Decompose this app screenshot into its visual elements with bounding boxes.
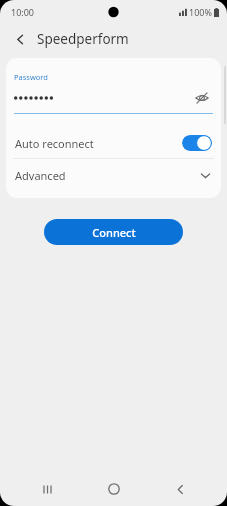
button[interactable]: Auto reconnect: [6, 128, 221, 158]
button[interactable]: Auto reconnect toggle: [182, 135, 212, 151]
staticText: Connect: [92, 225, 136, 240]
button[interactable]: Advanced: [6, 159, 221, 192]
staticText: Auto reconnect: [15, 136, 94, 151]
staticText: Speedperform: [37, 30, 129, 48]
button[interactable]: Show password: [191, 87, 213, 109]
staticText: 100%: [189, 6, 212, 18]
staticText: Advanced: [15, 168, 66, 183]
button[interactable]: Home: [95, 474, 133, 504]
button[interactable]: Recent apps: [28, 474, 66, 504]
button[interactable]: Back: [8, 27, 32, 51]
button[interactable]: Connect: [44, 219, 183, 245]
button[interactable]: Back: [161, 474, 199, 504]
staticText: Password: [14, 72, 48, 82]
button[interactable]: Password: [6, 58, 221, 114]
staticText: 10:00: [11, 6, 35, 18]
